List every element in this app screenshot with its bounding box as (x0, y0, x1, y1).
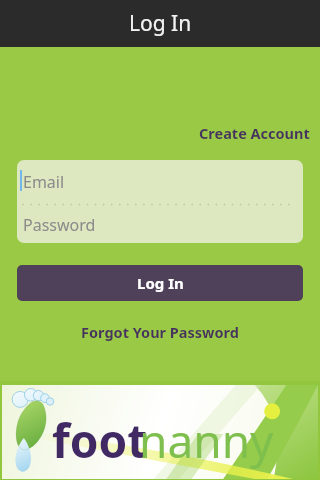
staticText: foot (52, 409, 148, 472)
staticText: Create Account (199, 123, 310, 143)
button[interactable]: Email (17, 160, 303, 202)
staticText: nanny (139, 409, 274, 472)
other: footnanny logo (0, 381, 320, 480)
staticText: Password (23, 214, 96, 236)
staticText: Log In (129, 9, 192, 38)
button[interactable]: Forgot Your Password (0, 319, 320, 345)
staticText: Email (23, 171, 65, 193)
button[interactable]: Log In (17, 265, 303, 301)
staticText: Log In (137, 273, 184, 293)
staticText: Forgot Your Password (81, 322, 239, 342)
button[interactable]: Create Account (170, 121, 310, 145)
button[interactable]: Password (17, 206, 303, 243)
